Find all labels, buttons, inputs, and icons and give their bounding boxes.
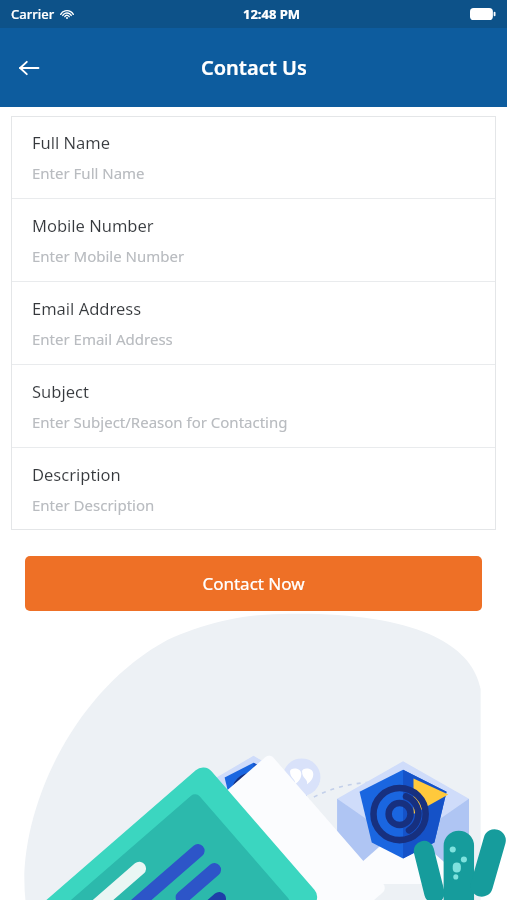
button[interactable]: Mobile Number — [11, 199, 496, 281]
button[interactable]: Back — [8, 47, 50, 89]
staticText: Enter Mobile Number — [32, 246, 185, 266]
staticText: Enter Email Address — [32, 329, 173, 349]
staticText: Carrier — [11, 5, 55, 23]
staticText: Mobile Number — [32, 214, 154, 236]
button[interactable]: Full Name — [11, 116, 496, 198]
button[interactable]: Description — [11, 448, 496, 530]
staticText: Enter Subject/Reason for Contacting — [32, 412, 288, 432]
staticText: 12:48 PM — [243, 5, 301, 23]
button[interactable]: Contact Now — [25, 556, 482, 611]
staticText: Enter Description — [32, 495, 155, 515]
staticText: Contact Us — [201, 54, 307, 81]
staticText: Enter Full Name — [32, 163, 145, 183]
staticText: Full Name — [32, 131, 111, 153]
staticText: Email Address — [32, 297, 142, 319]
staticText: Contact Now — [202, 572, 305, 595]
staticText: Subject — [32, 380, 89, 402]
staticText: Description — [32, 463, 121, 485]
button[interactable]: Subject — [11, 365, 496, 447]
button[interactable]: Email Address — [11, 282, 496, 364]
